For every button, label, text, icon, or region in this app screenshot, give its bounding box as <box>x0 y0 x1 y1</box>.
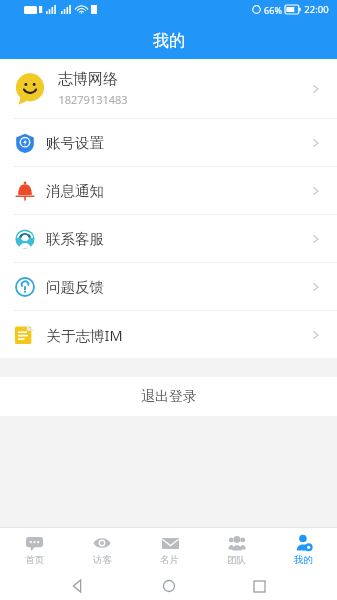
button[interactable]: 名片 <box>136 528 203 572</box>
staticText: 我的 <box>153 31 185 51</box>
button[interactable]: 首页 <box>0 528 68 572</box>
staticText: 18279131483 <box>58 92 128 107</box>
staticText: 问题反馈 <box>46 278 104 296</box>
button[interactable]: Home <box>156 573 182 599</box>
staticText: 账号设置 <box>46 134 104 152</box>
button[interactable]: 问题反馈 <box>0 263 337 310</box>
button[interactable]: 退出登录 <box>0 377 337 416</box>
staticText: 消息通知 <box>46 182 104 200</box>
button[interactable]: 账号设置 <box>0 119 337 166</box>
staticText: 关于志博IM <box>46 325 123 345</box>
staticText: 名片 <box>160 554 179 566</box>
button[interactable]: 我的 <box>270 528 337 572</box>
button[interactable]: 志博网络 <box>0 59 337 118</box>
staticText: 志博网络 <box>58 70 118 89</box>
staticText: 22:00 <box>304 3 329 16</box>
button[interactable]: Back <box>65 573 91 599</box>
button[interactable]: 访客 <box>68 528 136 572</box>
button[interactable]: Recents <box>246 573 272 599</box>
staticText: 66% <box>264 4 282 16</box>
staticText: 首页 <box>25 554 44 566</box>
staticText: 团队 <box>227 554 246 566</box>
staticText: 我的 <box>294 554 313 566</box>
button[interactable]: 团队 <box>203 528 270 572</box>
button[interactable]: 消息通知 <box>0 167 337 214</box>
button[interactable]: 联系客服 <box>0 215 337 262</box>
staticText: 访客 <box>93 554 112 566</box>
staticText: 退出登录 <box>141 388 197 406</box>
button[interactable]: 关于志博IM <box>0 311 337 358</box>
staticText: 联系客服 <box>46 230 104 248</box>
